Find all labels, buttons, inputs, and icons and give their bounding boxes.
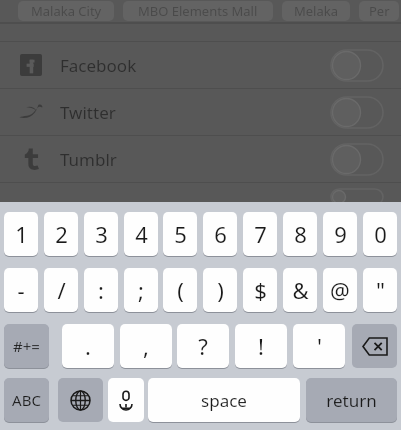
button[interactable]: Toggle bbox=[331, 189, 383, 205]
button[interactable]: ' bbox=[293, 324, 345, 368]
staticText: 5 bbox=[174, 219, 187, 249]
button[interactable]: ? bbox=[177, 324, 229, 368]
button[interactable]: space bbox=[148, 378, 300, 422]
staticText: 0 bbox=[374, 219, 387, 249]
button[interactable]: Toggle bbox=[331, 144, 383, 175]
staticText: 2 bbox=[55, 219, 68, 249]
staticText: ' bbox=[317, 331, 322, 361]
staticText: Per bbox=[369, 2, 390, 20]
staticText: : bbox=[98, 275, 104, 305]
staticText: - bbox=[17, 275, 25, 305]
button[interactable]: Per bbox=[359, 1, 399, 21]
staticText: " bbox=[376, 275, 385, 305]
button[interactable]: Switch keyboard bbox=[58, 378, 103, 422]
button[interactable]: . bbox=[62, 324, 114, 368]
button[interactable]: Melaka bbox=[282, 1, 350, 21]
button[interactable]: ; bbox=[124, 268, 158, 312]
button[interactable]: #+= bbox=[4, 324, 49, 368]
button[interactable]: 9 bbox=[323, 212, 357, 256]
staticText: ) bbox=[217, 275, 224, 305]
button[interactable]: 3 bbox=[84, 212, 118, 256]
button[interactable]: Malaka City bbox=[18, 1, 114, 21]
button[interactable]: ( bbox=[163, 268, 197, 312]
staticText: MBO Elements Mall bbox=[138, 2, 258, 20]
button[interactable]: 0 bbox=[363, 212, 397, 256]
button[interactable]: Twitter bbox=[0, 89, 401, 135]
button[interactable]: ! bbox=[235, 324, 287, 368]
staticText: Twitter bbox=[60, 101, 116, 124]
button[interactable]: Voice input bbox=[108, 378, 144, 422]
button[interactable]: 7 bbox=[243, 212, 277, 256]
staticText: Melaka bbox=[294, 2, 339, 20]
button[interactable]: MBO Elements Mall bbox=[123, 1, 273, 21]
button[interactable]: Facebook bbox=[0, 42, 401, 88]
staticText: ? bbox=[198, 331, 208, 361]
staticText: Tumblr bbox=[60, 148, 117, 171]
button[interactable]: 4 bbox=[124, 212, 158, 256]
staticText: , bbox=[143, 331, 149, 361]
staticText: 8 bbox=[294, 219, 307, 249]
button[interactable]: $ bbox=[243, 268, 277, 312]
button[interactable]: / bbox=[44, 268, 78, 312]
staticText: / bbox=[57, 275, 66, 305]
button[interactable]: - bbox=[4, 268, 38, 312]
button[interactable]: 2 bbox=[44, 212, 78, 256]
staticText: 4 bbox=[135, 219, 148, 249]
staticText: ; bbox=[138, 275, 144, 305]
button[interactable]: & bbox=[283, 268, 317, 312]
button[interactable]: Toggle bbox=[331, 97, 383, 128]
staticText: & bbox=[292, 275, 309, 305]
button[interactable]: 6 bbox=[203, 212, 237, 256]
button[interactable]: Tumblr bbox=[0, 136, 401, 182]
staticText: $ bbox=[254, 275, 267, 305]
button[interactable]: 5 bbox=[163, 212, 197, 256]
staticText: 9 bbox=[334, 219, 347, 249]
staticText: 6 bbox=[214, 219, 227, 249]
button[interactable]: Backspace bbox=[352, 324, 397, 368]
button[interactable]: , bbox=[120, 324, 172, 368]
staticText: ABC bbox=[12, 390, 41, 410]
button[interactable]: " bbox=[363, 268, 397, 312]
button[interactable]: @ bbox=[323, 268, 357, 312]
staticText: @ bbox=[330, 275, 350, 305]
staticText: return bbox=[326, 389, 377, 412]
button[interactable]: 1 bbox=[4, 212, 38, 256]
button[interactable]: ABC bbox=[4, 378, 49, 422]
button[interactable]: Toggle bbox=[331, 50, 383, 81]
staticText: Malaka City bbox=[31, 2, 102, 20]
staticText: 1 bbox=[15, 219, 28, 249]
staticText: Facebook bbox=[60, 54, 137, 77]
staticText: ! bbox=[258, 331, 264, 361]
staticText: . bbox=[85, 331, 91, 361]
button[interactable]: return bbox=[306, 378, 397, 422]
staticText: space bbox=[201, 389, 247, 412]
button[interactable]: : bbox=[84, 268, 118, 312]
staticText: ( bbox=[177, 275, 184, 305]
staticText: 7 bbox=[254, 219, 267, 249]
button[interactable]: 8 bbox=[283, 212, 317, 256]
staticText: #+= bbox=[13, 336, 40, 356]
staticText: 3 bbox=[95, 219, 108, 249]
button[interactable]: ) bbox=[203, 268, 237, 312]
